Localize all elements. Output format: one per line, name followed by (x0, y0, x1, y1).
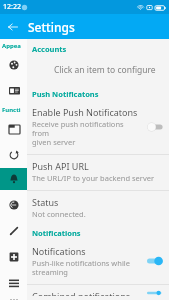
button[interactable]: Plugins (5, 248, 23, 266)
button[interactable]: Click an item to configure (27, 57, 169, 83)
staticText: The URL/IP to your backend server (32, 173, 155, 183)
staticText: Notifications (32, 245, 86, 257)
staticText: Status (32, 196, 59, 208)
staticText: Not connected. (32, 209, 86, 219)
button[interactable]: Sync (5, 146, 23, 164)
button[interactable]: Back (4, 18, 22, 36)
button[interactable]: Display (5, 82, 23, 100)
button[interactable]: Push API URL (27, 156, 169, 187)
staticText: Push-like notifications while streaming (32, 258, 130, 277)
staticText: Combined notifications (32, 290, 131, 296)
button[interactable]: Status (27, 192, 169, 223)
staticText: Accounts (32, 44, 169, 54)
button[interactable]: Notifications (0, 168, 27, 190)
staticText: Settings (28, 19, 75, 35)
button[interactable]: Network (5, 196, 23, 214)
staticText: Click an item to configure (54, 64, 156, 76)
button[interactable]: Lists (5, 274, 23, 292)
button[interactable]: Notifications (27, 241, 169, 281)
button[interactable]: Toggle on (145, 290, 165, 296)
button[interactable]: Enable Push Notificatons (27, 102, 169, 151)
staticText: Notifications (32, 228, 169, 238)
button[interactable]: Toggle off (145, 121, 165, 133)
button[interactable]: Window (5, 120, 23, 138)
button[interactable]: Combined notifications (27, 286, 169, 300)
staticText: Push Notificatons (32, 89, 169, 99)
staticText: Receive push notifications from given se… (32, 119, 142, 147)
button[interactable]: Toggle on (145, 255, 165, 267)
staticText: Push API URL (32, 160, 89, 172)
staticText: Enable Push Notificatons (32, 106, 138, 118)
button[interactable]: Theme (5, 56, 23, 74)
staticText: Appea (2, 42, 27, 50)
staticText: Functi (2, 106, 27, 114)
staticText: 12:22 (3, 2, 21, 12)
button[interactable]: Edit (5, 222, 23, 240)
